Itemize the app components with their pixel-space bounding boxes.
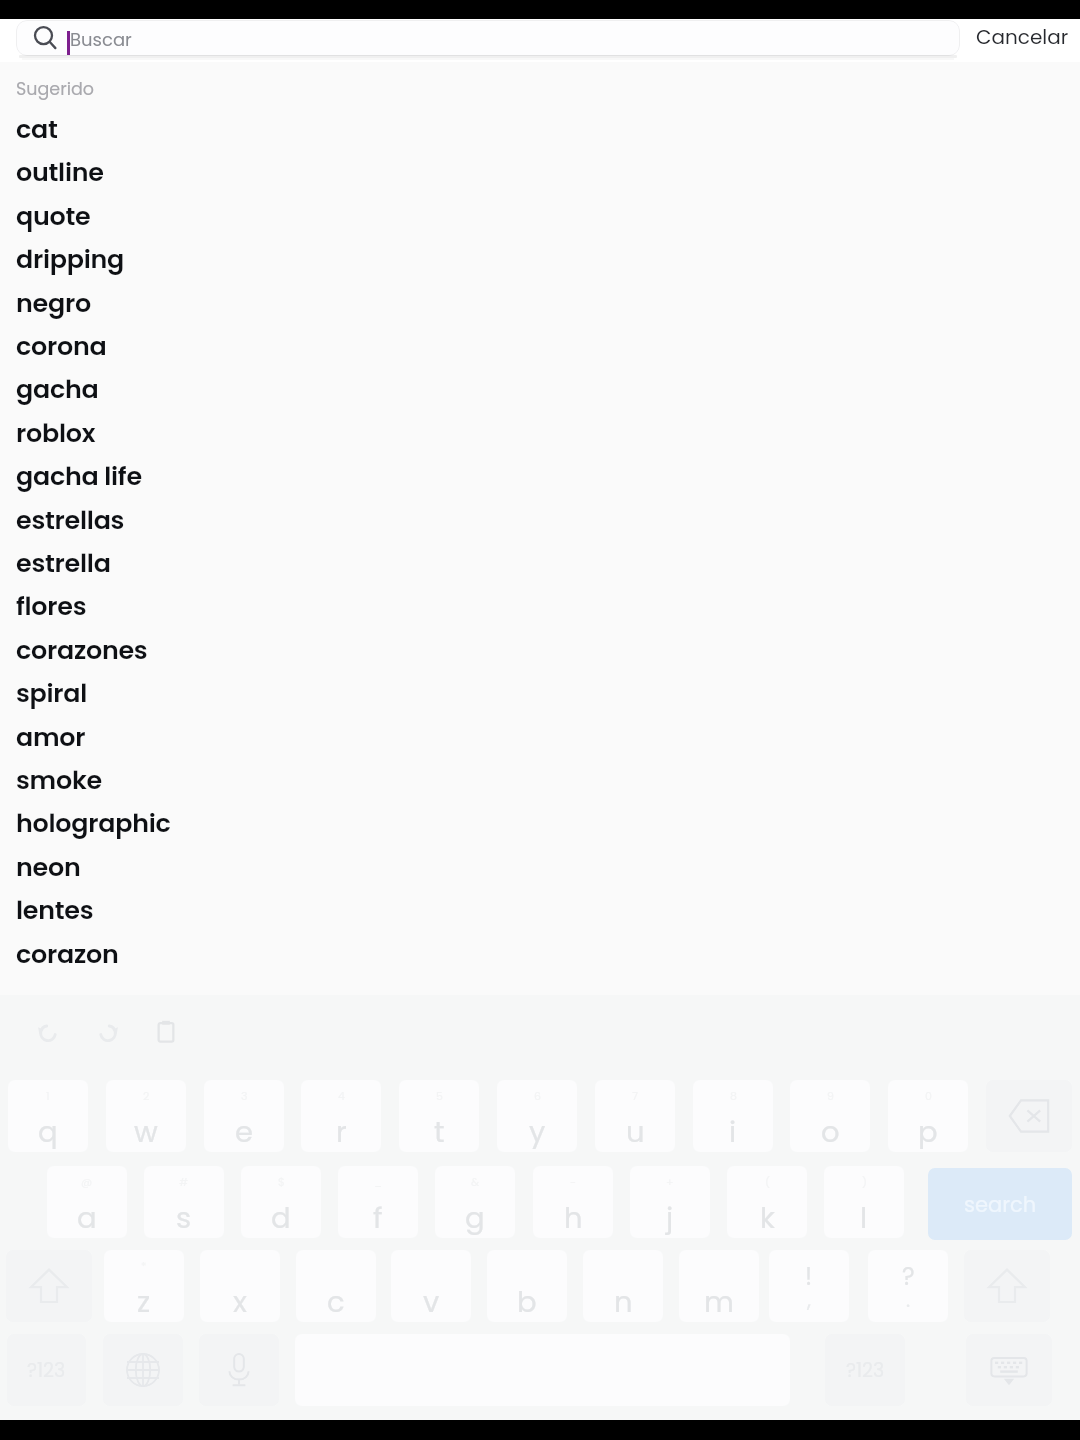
button[interactable]: smoke <box>0 758 1080 801</box>
button[interactable]: outline <box>0 150 1080 193</box>
button[interactable]: 3 <box>204 1080 284 1152</box>
button[interactable]: holographic <box>0 801 1080 844</box>
staticText: ?123 <box>27 1357 66 1384</box>
button[interactable]: Undo <box>32 1016 64 1048</box>
staticText: h <box>564 1198 583 1238</box>
button[interactable]: & <box>435 1166 515 1238</box>
button[interactable]: corazones <box>0 628 1080 671</box>
button[interactable]: $ <box>241 1166 321 1238</box>
button[interactable]: quote <box>0 194 1080 237</box>
staticText: k <box>760 1198 775 1238</box>
button[interactable]: c <box>296 1250 376 1322</box>
button[interactable]: Backspace <box>986 1080 1072 1152</box>
button[interactable]: Hide keyboard <box>966 1334 1052 1406</box>
staticText: z <box>137 1282 151 1322</box>
button[interactable]: Redo <box>92 1016 124 1048</box>
staticText: Sugerido <box>16 77 95 102</box>
staticText: holographic <box>16 805 171 841</box>
button[interactable]: dripping <box>0 237 1080 280</box>
staticText: l <box>860 1198 868 1238</box>
staticText: ( <box>765 1174 770 1189</box>
staticText: 0 <box>925 1088 932 1103</box>
staticText: ) <box>862 1174 867 1189</box>
button[interactable]: flores <box>0 584 1080 627</box>
button[interactable]: b <box>487 1250 567 1322</box>
staticText: roblox <box>16 415 96 451</box>
button[interactable]: gacha life <box>0 454 1080 497</box>
staticText: outline <box>16 154 104 190</box>
staticText: gacha <box>16 371 99 407</box>
button[interactable]: 2 <box>106 1080 186 1152</box>
staticText: m <box>704 1282 734 1322</box>
staticText: corazones <box>16 632 148 668</box>
button[interactable]: Buscar <box>16 20 960 56</box>
staticText: t <box>434 1112 445 1152</box>
button[interactable]: gacha <box>0 367 1080 410</box>
button[interactable]: * <box>104 1250 184 1322</box>
staticText: corazon <box>16 936 119 972</box>
button[interactable]: x <box>200 1250 280 1322</box>
button[interactable]: lentes <box>0 888 1080 931</box>
staticText: , <box>807 1286 811 1314</box>
button[interactable]: 6 <box>497 1080 577 1152</box>
staticText: s <box>176 1198 192 1238</box>
button[interactable]: 1 <box>8 1080 88 1152</box>
staticText: ? <box>902 1260 915 1294</box>
staticText: g <box>465 1198 485 1238</box>
button[interactable]: estrella <box>0 541 1080 584</box>
staticText: w <box>134 1112 158 1152</box>
staticText: neon <box>16 849 81 885</box>
button[interactable]: @ <box>47 1166 127 1238</box>
button[interactable]: search <box>928 1168 1072 1240</box>
staticText: j <box>666 1198 674 1238</box>
button[interactable]: m <box>679 1250 759 1322</box>
button[interactable]: n <box>583 1250 663 1322</box>
button[interactable]: # <box>144 1166 224 1238</box>
button[interactable]: corona <box>0 324 1080 367</box>
button[interactable]: corazon <box>0 932 1080 975</box>
button[interactable]: Clipboard <box>150 1016 182 1048</box>
staticText: Buscar <box>70 27 132 52</box>
staticText: b <box>517 1282 537 1322</box>
staticText: 9 <box>827 1088 834 1103</box>
staticText: x <box>233 1282 247 1322</box>
button[interactable]: spiral <box>0 671 1080 714</box>
button[interactable]: cat <box>0 107 1080 150</box>
button[interactable]: amor <box>0 715 1080 758</box>
button[interactable]: 7 <box>595 1080 675 1152</box>
button[interactable]: 9 <box>790 1080 870 1152</box>
staticText: estrellas <box>16 502 125 538</box>
staticText: 2 <box>143 1088 150 1103</box>
button[interactable]: negro <box>0 281 1080 324</box>
staticText: $ <box>278 1174 285 1189</box>
button[interactable]: roblox <box>0 411 1080 454</box>
button[interactable]: v <box>391 1250 471 1322</box>
button[interactable]: Language <box>103 1334 183 1406</box>
button[interactable]: 0 <box>888 1080 968 1152</box>
button[interactable]: - <box>533 1166 613 1238</box>
staticText: amor <box>16 719 86 755</box>
staticText: v <box>423 1282 440 1322</box>
button[interactable]: Cancelar <box>968 19 1076 62</box>
staticText: d <box>271 1198 291 1238</box>
button[interactable]: ( <box>727 1166 807 1238</box>
button[interactable]: estrellas <box>0 498 1080 541</box>
button[interactable]: neon <box>0 845 1080 888</box>
staticText: spiral <box>16 675 88 711</box>
staticText: & <box>471 1174 480 1189</box>
